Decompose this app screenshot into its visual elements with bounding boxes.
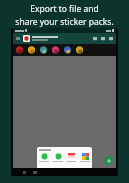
button[interactable]: Sticker (15, 46, 24, 55)
staticText: share your sticker packs. (15, 16, 114, 28)
button[interactable]: Navigate up (15, 36, 21, 42)
button[interactable]: More options (108, 36, 114, 42)
button[interactable]: Search (100, 36, 106, 42)
button[interactable]: Share (92, 36, 98, 42)
button[interactable]: Sticker (63, 46, 72, 55)
button[interactable]: Sticker (39, 46, 48, 55)
button[interactable]: Sticker (27, 46, 36, 55)
button[interactable]: Share target (38, 153, 50, 162)
button[interactable]: Share target (52, 153, 64, 162)
staticText: Export to file and (30, 3, 99, 15)
button[interactable]: Add sticker pack (104, 156, 113, 165)
button[interactable]: Sticker (75, 46, 84, 55)
button[interactable]: Share target (65, 153, 77, 162)
button[interactable]: Share target (79, 153, 91, 162)
button[interactable]: Sticker (51, 46, 60, 55)
